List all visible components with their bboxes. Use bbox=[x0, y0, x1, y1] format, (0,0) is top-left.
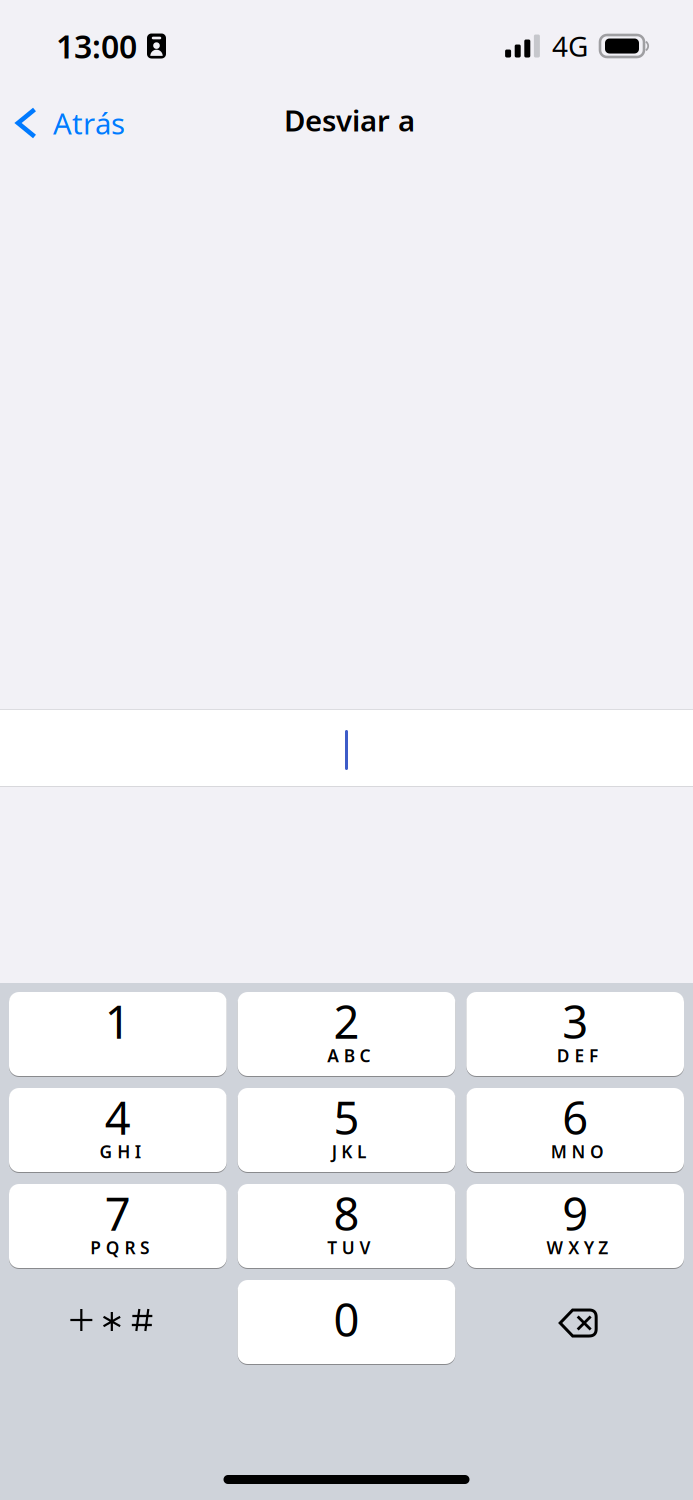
button[interactable]: 2 bbox=[238, 992, 455, 1076]
staticText: 9 bbox=[562, 1183, 588, 1243]
staticText: TUV bbox=[327, 1236, 370, 1259]
staticText: Desviar a bbox=[284, 100, 415, 139]
button[interactable]: 9 bbox=[466, 1184, 684, 1268]
staticText: JKL bbox=[332, 1140, 366, 1163]
staticText: 0 bbox=[333, 1289, 359, 1349]
button[interactable]: Delete bbox=[466, 1280, 684, 1364]
staticText: 2 bbox=[333, 991, 359, 1051]
staticText: PQRS bbox=[90, 1236, 150, 1259]
button[interactable]: Atrás bbox=[0, 100, 139, 158]
staticText: 8 bbox=[333, 1183, 359, 1243]
button[interactable]: 1 bbox=[9, 992, 227, 1076]
staticText: 6 bbox=[562, 1087, 588, 1147]
staticText: MNO bbox=[551, 1140, 604, 1163]
staticText: 13:00 bbox=[56, 25, 137, 67]
button[interactable]: 4 bbox=[9, 1088, 227, 1172]
staticText: WXYZ bbox=[547, 1236, 608, 1259]
staticText: 1 bbox=[105, 991, 131, 1051]
staticText: DEF bbox=[557, 1044, 598, 1067]
staticText: Atrás bbox=[53, 103, 125, 142]
staticText: 4 bbox=[105, 1087, 131, 1147]
button[interactable]: 8 bbox=[238, 1184, 455, 1268]
staticText: ABC bbox=[327, 1044, 370, 1067]
button[interactable]: 6 bbox=[466, 1088, 684, 1172]
button[interactable]: Plus, star, pound bbox=[9, 1280, 227, 1364]
staticText: 4G bbox=[552, 27, 588, 65]
button[interactable]: 7 bbox=[9, 1184, 227, 1268]
button[interactable]: 0 bbox=[238, 1280, 455, 1364]
staticText: GHI bbox=[99, 1140, 141, 1163]
button[interactable]: 5 bbox=[238, 1088, 455, 1172]
staticText: 7 bbox=[105, 1183, 131, 1243]
button[interactable]: 3 bbox=[466, 992, 684, 1076]
staticText: 3 bbox=[562, 991, 588, 1051]
staticText: 5 bbox=[333, 1087, 359, 1147]
